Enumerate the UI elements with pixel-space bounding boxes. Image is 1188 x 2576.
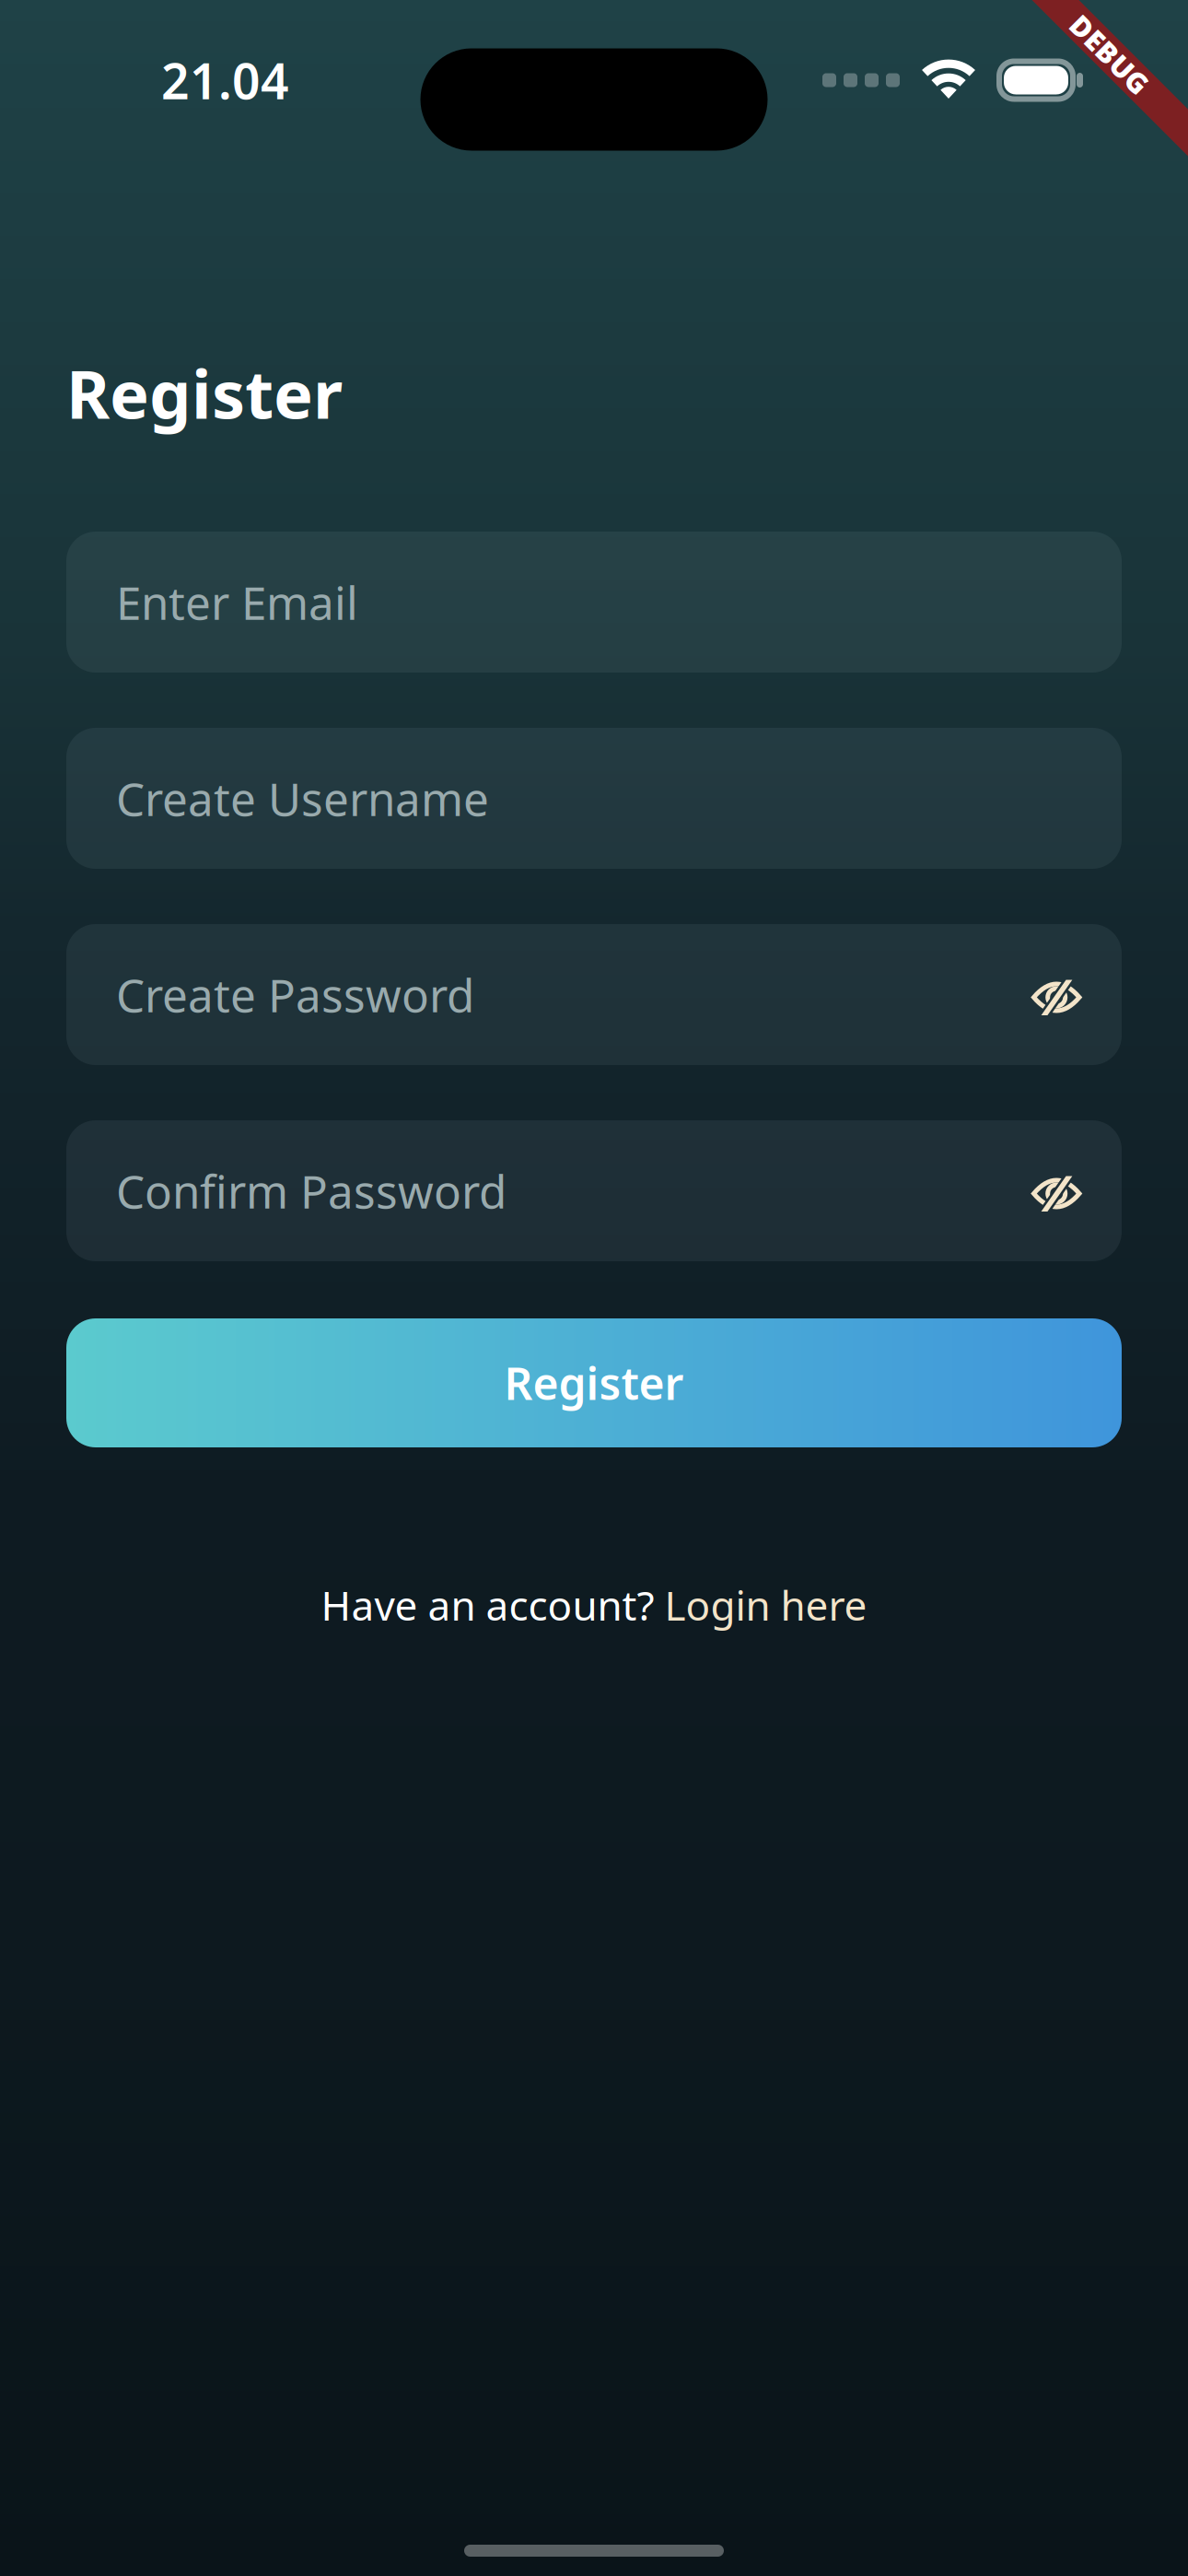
staticText: Login here bbox=[664, 1578, 867, 1632]
button[interactable]: Show password bbox=[1014, 948, 1097, 1041]
staticText: Have an account? bbox=[321, 1578, 664, 1632]
staticText: DEBUG bbox=[1060, 36, 1159, 73]
button[interactable]: Show password bbox=[1014, 1145, 1097, 1237]
staticText: Register bbox=[66, 349, 343, 437]
staticText: Confirm Password bbox=[116, 1161, 507, 1221]
staticText: 21.04 bbox=[161, 48, 289, 113]
button[interactable]: Register bbox=[66, 1318, 1122, 1447]
staticText: Create Password bbox=[116, 964, 474, 1025]
staticText: Register bbox=[504, 1354, 684, 1412]
button[interactable]: Have an account? bbox=[321, 1573, 867, 1637]
staticText: Create Username bbox=[116, 768, 489, 828]
staticText: Enter Email bbox=[116, 572, 358, 632]
